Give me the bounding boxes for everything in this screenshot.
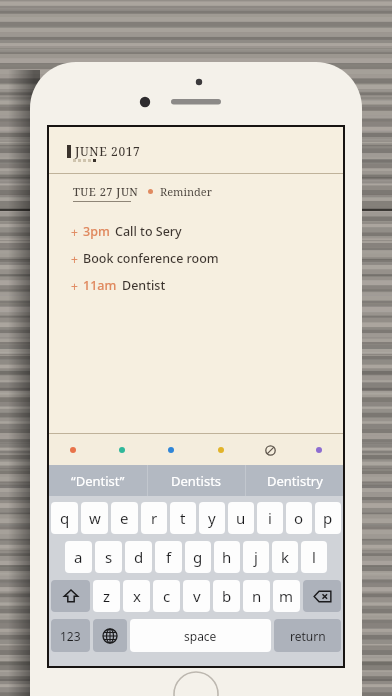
staticText: p (323, 508, 333, 528)
staticText: return (290, 628, 326, 644)
button[interactable]: y (199, 502, 225, 534)
button[interactable]: k (272, 541, 298, 573)
staticText: + (71, 251, 78, 267)
button[interactable]: t (170, 502, 196, 534)
staticText: Call to Sery (115, 223, 182, 240)
button[interactable]: Yellow tag (211, 440, 231, 460)
staticText: 11am (83, 277, 117, 294)
button[interactable]: d (125, 541, 152, 573)
button[interactable]: q (51, 502, 78, 534)
staticText: JUNE 2017 (75, 143, 141, 159)
button[interactable]: “Dentist” (49, 465, 147, 496)
staticText: t (180, 508, 186, 528)
staticText: s (105, 547, 113, 567)
staticText: + (71, 278, 78, 294)
staticText: b (222, 586, 232, 606)
staticText: z (103, 586, 111, 606)
button[interactable]: e (111, 502, 138, 534)
staticText: a (74, 547, 83, 567)
staticText: e (120, 508, 129, 528)
button[interactable]: s (95, 541, 122, 573)
staticText: h (222, 547, 232, 567)
staticText: c (163, 586, 171, 606)
staticText: q (60, 508, 70, 528)
staticText: TUE 27 JUN (73, 184, 139, 199)
staticText: Dentist (122, 277, 166, 294)
button[interactable]: + (49, 218, 343, 245)
button[interactable]: Blue tag (161, 440, 181, 460)
button[interactable]: a (65, 541, 92, 573)
button[interactable]: Dentistry (246, 465, 343, 496)
staticText: “Dentist” (71, 472, 125, 490)
button[interactable]: l (301, 541, 327, 573)
button[interactable]: b (213, 580, 240, 612)
button[interactable]: v (183, 580, 210, 612)
button[interactable]: Dentists (148, 465, 245, 496)
staticText: w (89, 508, 101, 528)
button[interactable]: No colour tag (260, 440, 280, 460)
button[interactable]: Backspace (303, 580, 341, 612)
staticText: k (281, 547, 290, 567)
button[interactable]: h (214, 541, 240, 573)
button[interactable]: u (228, 502, 254, 534)
staticText: o (294, 508, 304, 528)
button[interactable]: z (93, 580, 120, 612)
staticText: j (254, 547, 258, 567)
button[interactable]: i (257, 502, 283, 534)
button[interactable]: Change keyboard (93, 619, 127, 652)
staticText: Book conference room (83, 250, 219, 267)
staticText: u (236, 508, 246, 528)
staticText: f (166, 547, 172, 567)
staticText: r (151, 508, 158, 528)
button[interactable]: space (130, 619, 271, 652)
staticText: 123 (60, 628, 81, 644)
button[interactable]: return (274, 619, 341, 652)
button[interactable]: c (153, 580, 180, 612)
button[interactable]: g (185, 541, 211, 573)
staticText: v (193, 586, 201, 606)
button[interactable]: x (123, 580, 150, 612)
button[interactable]: p (315, 502, 341, 534)
staticText: n (252, 586, 262, 606)
staticText: space (184, 628, 217, 644)
button[interactable]: m (273, 580, 300, 612)
staticText: l (312, 547, 316, 567)
staticText: 3pm (83, 223, 110, 240)
button[interactable]: 123 (51, 619, 90, 652)
staticText: i (268, 508, 272, 528)
button[interactable]: Green tag (112, 440, 132, 460)
button[interactable]: Shift (51, 580, 90, 612)
staticText: Reminder (160, 184, 212, 199)
button[interactable]: + (49, 245, 343, 272)
button[interactable]: w (81, 502, 108, 534)
button[interactable]: j (243, 541, 269, 573)
button[interactable]: r (141, 502, 167, 534)
staticText: Dentists (171, 472, 222, 490)
staticText: g (193, 547, 203, 567)
button[interactable]: f (155, 541, 182, 573)
staticText: x (133, 586, 141, 606)
staticText: m (279, 586, 294, 606)
staticText: d (134, 547, 144, 567)
staticText: + (71, 224, 78, 240)
button[interactable]: Purple tag (309, 440, 329, 460)
button[interactable]: o (286, 502, 312, 534)
staticText: Dentistry (267, 472, 323, 490)
staticText: y (208, 508, 216, 528)
button[interactable]: Red tag (63, 440, 83, 460)
button[interactable]: n (243, 580, 270, 612)
button[interactable]: + (49, 272, 343, 299)
